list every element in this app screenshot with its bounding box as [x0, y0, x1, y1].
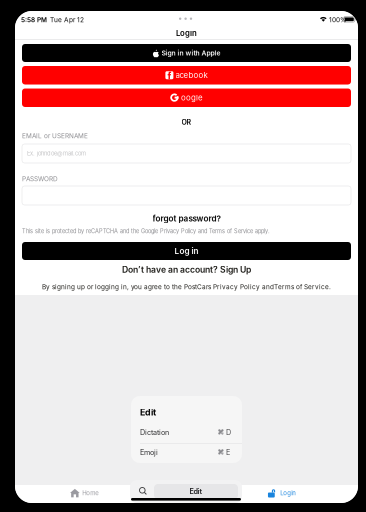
staticText: This site is protected by reCAPTCHA and …	[22, 228, 270, 235]
staticText: OR	[181, 118, 191, 126]
staticText: forgot password?	[152, 214, 220, 223]
staticText: Dictation	[140, 428, 169, 437]
staticText: Edit	[140, 407, 156, 418]
button[interactable]: Search	[135, 484, 151, 498]
staticText: PASSWORD	[22, 175, 58, 183]
staticText: By signing up or logging in, you agree t…	[42, 283, 331, 291]
button[interactable]: Home	[59, 486, 109, 500]
button[interactable]: Login	[257, 486, 307, 500]
staticText: Login	[176, 28, 197, 38]
staticText: Log in	[174, 246, 198, 256]
button[interactable]: Dictation	[131, 422, 242, 443]
staticText: oogle	[181, 93, 203, 102]
button[interactable]: forgot password?	[15, 213, 358, 224]
button[interactable]: acebook	[22, 66, 351, 84]
staticText: Login	[280, 489, 296, 497]
staticText: Don’t have an account? Sign Up	[122, 264, 251, 275]
staticText: 5:58 PM	[21, 16, 47, 24]
staticText: Home	[82, 489, 98, 497]
button[interactable]: Log in	[22, 242, 351, 260]
staticText: Tue Apr 12	[50, 16, 84, 24]
staticText: Ex. johndoe@mail.com	[27, 150, 86, 157]
button[interactable]: Don’t have an account? Sign Up	[15, 264, 358, 275]
staticText: D	[226, 428, 231, 437]
staticText: acebook	[176, 70, 208, 80]
staticText: Emoji	[140, 448, 158, 457]
staticText: Edit	[189, 487, 202, 496]
staticText: 100%	[329, 16, 346, 24]
button[interactable]: oogle	[22, 88, 351, 107]
button[interactable]: Emoji	[131, 443, 242, 463]
staticText: E	[226, 448, 230, 457]
button[interactable]: Edit	[154, 484, 238, 499]
staticText: EMAIL or USERNAME	[22, 132, 88, 140]
button[interactable]: Sign in with Apple	[22, 44, 351, 62]
staticText: Sign in with Apple	[162, 49, 221, 57]
